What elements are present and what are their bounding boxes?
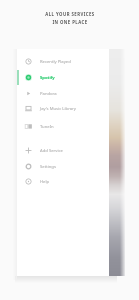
button[interactable]: Help	[17, 174, 109, 189]
staticText: Settings	[40, 164, 56, 170]
staticText: Pandora	[40, 91, 57, 97]
button[interactable]: Add Service	[17, 143, 109, 158]
button[interactable]: Recently Played	[17, 54, 109, 69]
staticText: Help	[40, 179, 50, 185]
staticText: IN ONE PLACE	[52, 19, 88, 25]
button[interactable]: Pandora	[17, 86, 109, 101]
button[interactable]: Jay's Music Library	[17, 101, 109, 116]
staticText: Recently Played	[40, 59, 71, 65]
staticText: Jay's Music Library	[40, 106, 76, 112]
staticText: ALL YOUR SERVICES	[45, 11, 95, 17]
button[interactable]: Spotify	[17, 70, 109, 85]
staticText: Add Service	[40, 148, 63, 154]
staticText: TuneIn	[40, 124, 54, 130]
button[interactable]: TuneIn	[17, 119, 109, 134]
staticText: Spotify	[40, 75, 55, 81]
button[interactable]: Settings	[17, 159, 109, 174]
